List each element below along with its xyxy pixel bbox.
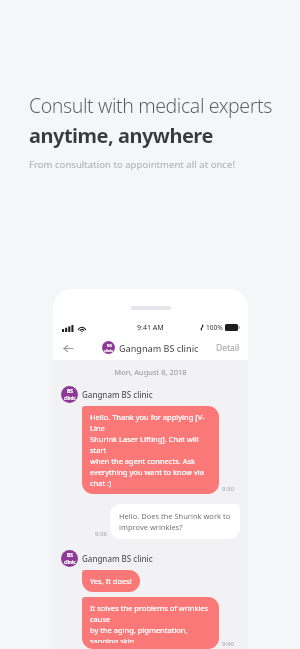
staticText: 100% — [206, 323, 223, 332]
staticText: Gangnam BS clinic — [82, 553, 153, 564]
staticText: Gangnam BS clinic — [82, 389, 153, 400]
staticText: Consult with medical experts — [29, 92, 272, 119]
button[interactable]: Yes, It does! — [82, 570, 140, 592]
staticText: 9:41 AM — [137, 323, 164, 333]
button[interactable]: It solves the problems of wrinkles cause… — [82, 597, 219, 649]
staticText: BS — [67, 552, 74, 559]
staticText: BS — [67, 388, 74, 395]
staticText: Hello. Does the Shurink work to improve … — [119, 511, 231, 532]
staticText: clinic — [64, 559, 76, 565]
staticText: BS — [107, 343, 112, 348]
button[interactable]: BS — [102, 341, 199, 354]
staticText: Hello. Thank you for applying [V-Line Sh… — [90, 412, 211, 488]
staticText: 9:40 — [222, 640, 234, 648]
staticText: anytime, anywhere — [29, 122, 213, 149]
staticText: clinic — [64, 395, 76, 401]
staticText: 9:30 — [222, 485, 234, 493]
button[interactable]: Detail — [208, 338, 248, 358]
button[interactable]: Back — [57, 337, 79, 359]
staticText: Mon, August 8, 2018 — [61, 367, 240, 377]
staticText: It solves the problems of wrinkles cause… — [90, 603, 211, 643]
staticText: Gangnam BS clinic — [119, 342, 199, 354]
staticText: From consultation to appointment all at … — [29, 158, 235, 171]
staticText: Yes, It does! — [90, 576, 132, 586]
staticText: 9:36 — [95, 530, 107, 538]
staticText: Detail — [216, 342, 240, 354]
button[interactable]: Hello. Thank you for applying [V-Line Sh… — [82, 406, 219, 494]
staticText: clinic — [104, 348, 114, 353]
button[interactable]: Hello. Does the Shurink work to improve … — [110, 504, 240, 539]
